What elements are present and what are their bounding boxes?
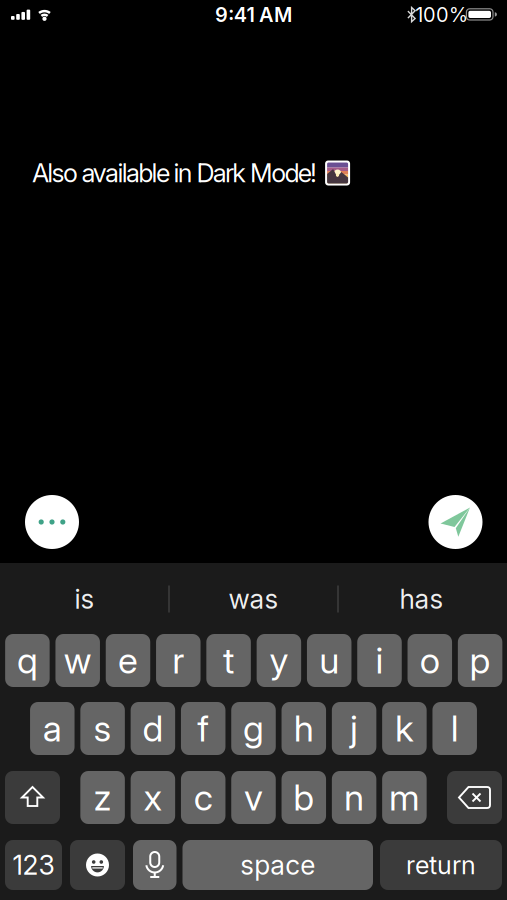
button[interactable]: v [231,771,276,824]
staticText: q [17,639,38,682]
staticText: space [240,849,315,881]
staticText: 123 [12,849,54,881]
staticText: w [64,639,92,682]
staticText: v [244,776,263,819]
button[interactable]: o [407,634,452,687]
button[interactable]: t [206,634,251,687]
staticText: d [142,707,163,750]
button[interactable]: q [5,634,50,687]
staticText: 9:41 AM [215,3,292,27]
button[interactable] [70,840,125,890]
staticText: x [143,776,162,819]
staticText: h [294,707,314,750]
staticText: has [399,583,443,615]
button[interactable]: b [281,771,326,824]
staticText: e [118,639,138,682]
button[interactable]: l [432,702,477,755]
button[interactable] [5,771,60,824]
staticText: return [406,850,476,880]
button[interactable]: k [382,702,427,755]
button[interactable]: s [80,702,125,755]
staticText: f [197,707,209,750]
staticText: l [451,707,459,750]
staticText: c [194,776,213,819]
staticText: r [172,639,184,682]
staticText: is [74,583,94,615]
button[interactable] [133,840,176,890]
staticText: m [389,776,420,819]
button[interactable]: has [341,576,501,622]
button[interactable]: w [55,634,100,687]
staticText: y [269,639,288,682]
button[interactable]: m [382,771,427,824]
button[interactable]: n [332,771,376,824]
button[interactable]: g [231,702,276,755]
staticText: i [375,639,383,682]
staticText: n [344,776,364,819]
button[interactable]: e [106,634,150,687]
button[interactable]: u [307,634,351,687]
staticText: g [243,707,264,750]
staticText: z [94,776,112,819]
staticText: s [94,707,112,750]
staticText: k [395,707,414,750]
button[interactable]: r [156,634,200,687]
staticText: was [228,583,278,615]
staticText: b [293,776,314,819]
staticText: a [43,707,62,750]
button[interactable] [447,771,502,824]
button[interactable]: is [4,576,164,622]
button[interactable] [428,495,482,549]
button[interactable]: x [131,771,175,824]
button[interactable]: return [380,840,502,890]
button[interactable]: f [181,702,225,755]
button[interactable]: i [357,634,402,687]
staticText: u [319,639,339,682]
button[interactable]: c [181,771,225,824]
button[interactable]: y [257,634,301,687]
button[interactable]: space [182,840,373,890]
staticText: Also available in Dark Mode! [32,158,317,188]
button[interactable]: was [173,576,333,622]
button[interactable]: z [80,771,125,824]
staticText: o [420,639,440,682]
button[interactable]: 123 [5,840,62,890]
button[interactable]: j [332,702,376,755]
staticText: p [470,639,491,682]
button[interactable]: h [282,702,326,755]
button[interactable]: a [30,702,74,755]
staticText: 100% [415,3,468,27]
button[interactable] [25,495,79,549]
button[interactable]: p [458,634,502,687]
staticText: j [350,707,358,750]
button[interactable]: d [131,702,175,755]
staticText: t [223,639,234,682]
